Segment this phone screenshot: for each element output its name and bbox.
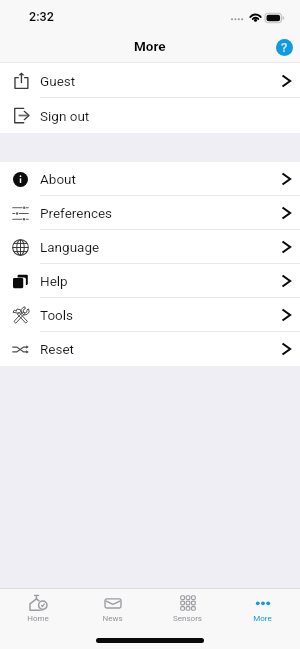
staticText: Reset — [40, 341, 75, 357]
button[interactable]: Home — [0, 589, 75, 627]
button[interactable]: News — [75, 589, 150, 627]
button[interactable]: Tools — [0, 298, 300, 332]
button[interactable]: Sensors — [150, 589, 225, 627]
staticText: Guest — [40, 73, 76, 89]
staticText: Preferences — [40, 205, 113, 221]
button[interactable]: Preferences — [0, 196, 300, 230]
staticText: ? — [281, 40, 288, 55]
staticText: Home — [27, 614, 49, 623]
staticText: News — [102, 614, 123, 623]
button[interactable]: Guest — [0, 63, 300, 98]
staticText: Tools — [40, 307, 74, 323]
staticText: More — [134, 38, 166, 54]
button[interactable]: About — [0, 162, 300, 196]
staticText: Help — [40, 273, 68, 289]
staticText: Sign out — [40, 108, 90, 124]
button[interactable]: Sign out — [0, 98, 300, 133]
button[interactable]: Help — [276, 39, 293, 56]
staticText: Sensors — [173, 614, 202, 623]
button[interactable]: Language — [0, 230, 300, 264]
other: Status icons — [0, 0, 300, 31]
staticText: 2:32 — [29, 9, 54, 24]
staticText: Language — [40, 239, 100, 255]
staticText: More — [253, 614, 272, 623]
button[interactable]: Reset — [0, 332, 300, 366]
button[interactable]: More — [225, 589, 300, 627]
staticText: About — [40, 171, 76, 187]
button[interactable]: Help — [0, 264, 300, 298]
